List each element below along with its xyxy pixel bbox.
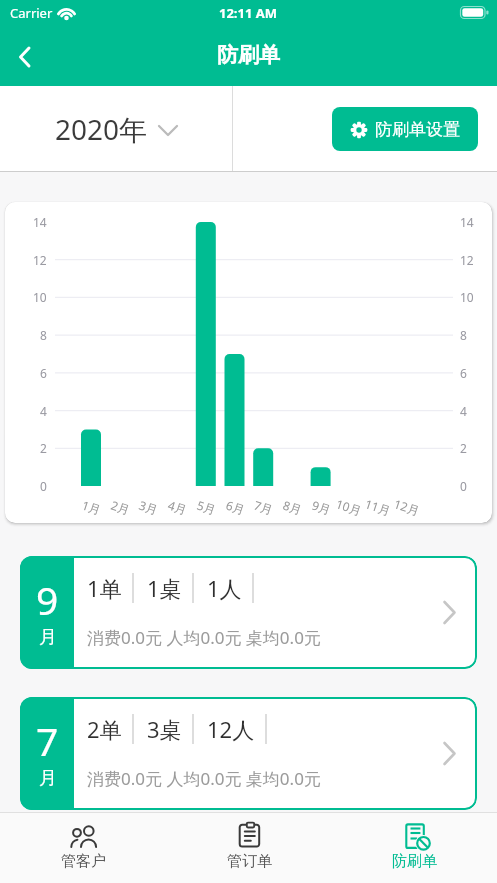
button[interactable] bbox=[4, 38, 44, 76]
button[interactable]: 9 bbox=[20, 556, 477, 669]
button[interactable]: 管订单 bbox=[166, 813, 332, 883]
button[interactable]: 管客户 bbox=[0, 813, 166, 883]
staticText: 12 bbox=[33, 252, 47, 268]
staticText: 2月 bbox=[109, 497, 132, 518]
staticText: 12月 bbox=[392, 495, 422, 519]
staticText: 2 bbox=[460, 440, 467, 456]
staticText: 0 bbox=[460, 478, 467, 494]
staticText: 10 bbox=[33, 289, 47, 305]
button[interactable]: 7 bbox=[20, 697, 477, 810]
staticText: 14 bbox=[33, 214, 47, 230]
staticText: 9月 bbox=[310, 497, 333, 518]
button[interactable]: 防刷单 bbox=[332, 813, 497, 883]
staticText: 10 bbox=[460, 289, 474, 305]
staticText: 6月 bbox=[224, 497, 247, 518]
staticText: 1单 bbox=[87, 573, 122, 603]
staticText: 7月 bbox=[252, 497, 275, 518]
button[interactable]: 2020年 bbox=[0, 86, 232, 172]
staticText: 14 bbox=[460, 214, 474, 230]
staticText: 防刷单 bbox=[392, 852, 437, 871]
staticText: 8月 bbox=[281, 497, 304, 518]
staticText: 月 bbox=[39, 626, 57, 649]
staticText: 消费0.0元 人均0.0元 桌均0.0元 bbox=[87, 626, 321, 649]
staticText: 2020年 bbox=[55, 110, 148, 148]
staticText: 7 bbox=[36, 714, 59, 767]
staticText: 4 bbox=[40, 403, 47, 419]
staticText: 管客户 bbox=[61, 852, 106, 871]
staticText: 3桌 bbox=[147, 714, 182, 744]
staticText: 月 bbox=[39, 767, 57, 790]
staticText: 8 bbox=[40, 327, 47, 343]
staticText: 11月 bbox=[363, 495, 393, 519]
staticText: 4 bbox=[460, 403, 467, 419]
staticText: 5月 bbox=[195, 497, 218, 518]
staticText: 12:11 AM bbox=[219, 4, 278, 22]
staticText: 12人 bbox=[207, 714, 255, 744]
staticText: 1月 bbox=[80, 497, 103, 518]
staticText: 3月 bbox=[137, 497, 160, 518]
staticText: 0 bbox=[40, 478, 47, 494]
staticText: 6 bbox=[460, 365, 467, 381]
staticText: 6 bbox=[40, 365, 47, 381]
staticText: 1人 bbox=[207, 573, 242, 603]
staticText: Carrier bbox=[10, 4, 53, 22]
staticText: 10月 bbox=[334, 495, 364, 519]
staticText: 消费0.0元 人均0.0元 桌均0.0元 bbox=[87, 767, 321, 790]
staticText: 防刷单 bbox=[217, 42, 280, 68]
staticText: 防刷单设置 bbox=[375, 119, 460, 140]
staticText: 12 bbox=[460, 252, 474, 268]
staticText: 2 bbox=[40, 440, 47, 456]
staticText: 4月 bbox=[166, 497, 189, 518]
staticText: 8 bbox=[460, 327, 467, 343]
button[interactable]: 防刷单设置 bbox=[332, 107, 478, 151]
staticText: 2单 bbox=[87, 714, 122, 744]
staticText: 管订单 bbox=[227, 852, 272, 871]
staticText: 9 bbox=[36, 573, 59, 626]
staticText: 1桌 bbox=[147, 573, 182, 603]
